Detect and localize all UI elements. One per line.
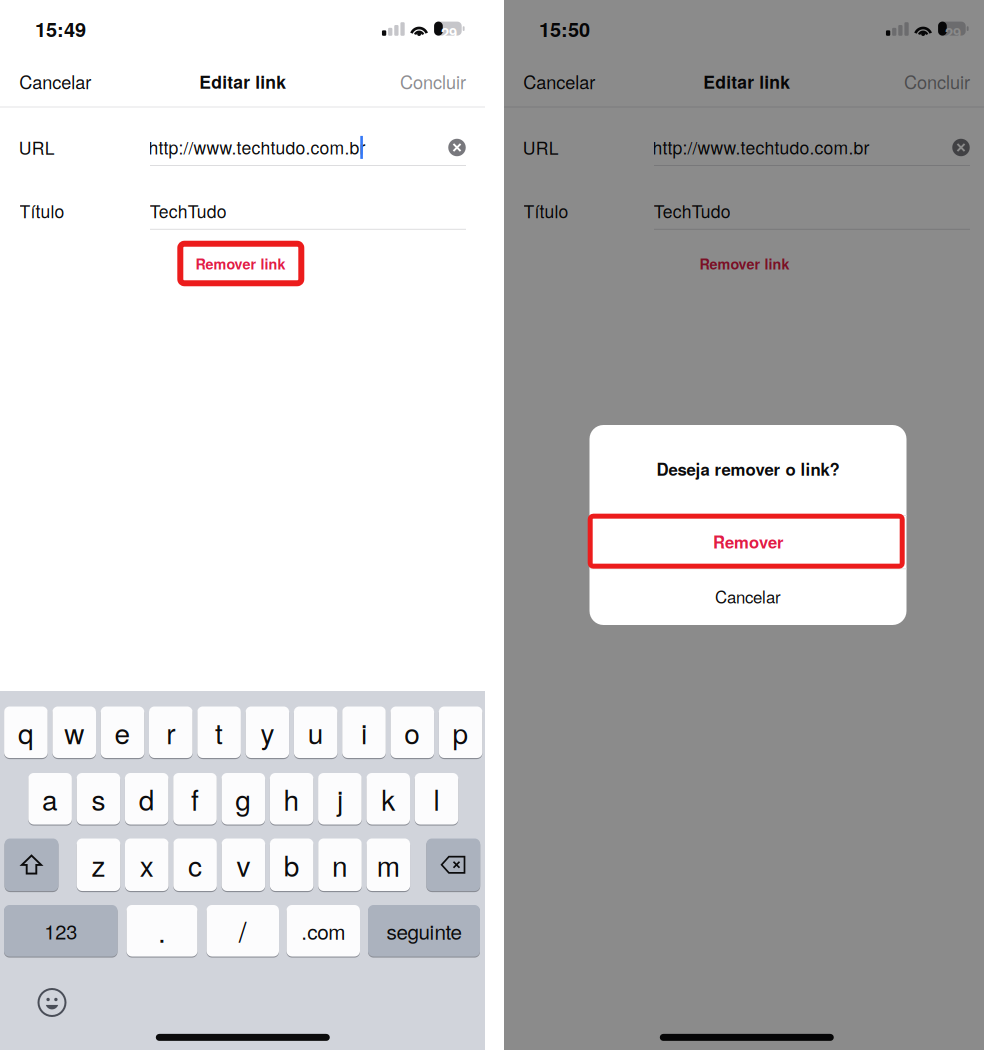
staticText: k	[381, 779, 395, 819]
staticText: f	[191, 779, 199, 819]
button[interactable]: .	[126, 905, 197, 956]
staticText: w	[64, 712, 84, 752]
staticText: y	[260, 712, 274, 752]
staticText: Deseja remover o link?	[656, 457, 839, 481]
button[interactable]: Emoji keyboard	[30, 980, 74, 1024]
staticText: URL	[19, 135, 55, 160]
staticText: Editar link	[199, 69, 286, 94]
button[interactable]: Clear text	[944, 130, 978, 164]
button[interactable]: i	[342, 706, 386, 758]
button[interactable]: o	[390, 706, 434, 758]
staticText: 29	[441, 22, 457, 43]
button[interactable]: Shift	[5, 838, 58, 891]
staticText: o	[404, 712, 420, 752]
staticText: TechTudo	[654, 198, 731, 223]
button[interactable]: g	[221, 773, 265, 824]
staticText: e	[114, 712, 130, 752]
staticText: Editar link	[703, 69, 790, 94]
staticText: c	[188, 845, 202, 885]
button[interactable]: k	[366, 773, 410, 824]
staticText: Remover	[713, 530, 783, 554]
staticText: q	[18, 712, 34, 752]
staticText: n	[332, 845, 348, 885]
staticText: 123	[44, 916, 77, 945]
button[interactable]: 123	[4, 905, 117, 956]
button[interactable]: u	[294, 706, 337, 758]
staticText: Concluir	[904, 68, 970, 94]
staticText: s	[91, 779, 105, 819]
button[interactable]: y	[246, 706, 289, 758]
button[interactable]: Cancelar	[589, 569, 906, 623]
button[interactable]: .com	[286, 905, 360, 956]
staticText: h	[284, 779, 300, 819]
staticText: .com	[301, 916, 345, 946]
button[interactable]: n	[318, 838, 362, 891]
staticText: d	[139, 779, 155, 819]
staticText: seguinte	[386, 916, 461, 946]
staticText: b	[284, 845, 300, 885]
button[interactable]: Clear text	[440, 130, 474, 164]
staticText: u	[308, 712, 324, 752]
button[interactable]: s	[77, 773, 120, 824]
button[interactable]: t	[197, 706, 241, 758]
button[interactable]: e	[101, 706, 144, 758]
button[interactable]: x	[125, 838, 169, 891]
staticText: Cancelar	[523, 68, 595, 94]
staticText: t	[215, 712, 223, 752]
button[interactable]: seguinte	[368, 905, 480, 956]
staticText: v	[236, 845, 250, 885]
button[interactable]: d	[125, 773, 168, 824]
button[interactable]: Delete	[426, 838, 480, 891]
staticText: Título	[523, 198, 568, 223]
staticText: .	[158, 911, 166, 951]
staticText: http://www.techtudo.com.br	[652, 134, 869, 160]
button[interactable]: r	[149, 706, 193, 758]
staticText: l	[433, 779, 439, 819]
button[interactable]: v	[222, 838, 265, 891]
button[interactable]: b	[270, 838, 313, 891]
staticText: http://www.techtudo.com.br	[148, 134, 365, 160]
button[interactable]: Cancelar	[7, 59, 103, 103]
button[interactable]: f	[173, 773, 217, 824]
staticText: x	[140, 845, 154, 885]
staticText: j	[337, 779, 343, 819]
staticText: Título	[19, 198, 64, 223]
button[interactable]: j	[318, 773, 362, 824]
staticText: i	[361, 712, 367, 752]
button[interactable]: h	[270, 773, 313, 824]
staticText: a	[42, 779, 58, 819]
staticText: g	[235, 779, 251, 819]
button[interactable]: w	[52, 706, 96, 758]
staticText: Cancelar	[715, 584, 781, 608]
staticText: Remover link	[699, 253, 789, 274]
staticText: Concluir	[400, 68, 466, 94]
staticText: Remover link	[195, 253, 285, 274]
button[interactable]: Cancelar	[511, 59, 607, 103]
button[interactable]: p	[439, 706, 482, 758]
staticText: 15:50	[539, 15, 590, 43]
staticText: p	[453, 712, 469, 752]
staticText: Cancelar	[19, 68, 91, 94]
staticText: URL	[523, 135, 559, 160]
button[interactable]: Remover link	[664, 240, 824, 286]
button[interactable]: a	[28, 773, 72, 824]
button[interactable]: Concluir	[891, 59, 983, 103]
button[interactable]: /	[206, 905, 279, 956]
staticText: 29	[945, 22, 961, 43]
button[interactable]: z	[77, 838, 120, 891]
staticText: 15:49	[35, 15, 86, 43]
button[interactable]: c	[173, 838, 217, 891]
button[interactable]: Concluir	[387, 59, 479, 103]
staticText: r	[166, 712, 175, 752]
button[interactable]: m	[366, 838, 410, 891]
staticText: z	[91, 845, 105, 885]
button[interactable]: l	[415, 773, 458, 824]
staticText: TechTudo	[150, 198, 227, 223]
staticText: m	[377, 845, 400, 885]
button[interactable]: Remover	[589, 514, 906, 569]
button[interactable]: Remover link	[160, 240, 320, 286]
staticText: /	[239, 911, 247, 951]
button[interactable]: q	[4, 706, 48, 758]
